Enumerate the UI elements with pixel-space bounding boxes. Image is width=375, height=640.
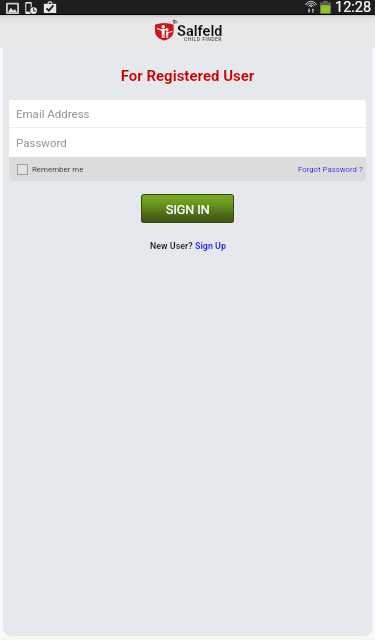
- staticText: Remember me: [32, 165, 84, 174]
- other: Work profile: [43, 1, 57, 14]
- button[interactable]: Sign Up: [195, 241, 226, 251]
- other: Screenshot captured: [6, 2, 19, 15]
- staticText: Sign Up: [195, 241, 226, 251]
- staticText: Email Address: [16, 107, 90, 120]
- other: Wi-Fi connected: [305, 1, 317, 13]
- staticText: Password: [16, 136, 67, 149]
- button[interactable]: Email Address: [9, 100, 366, 127]
- staticText: New User?: [150, 241, 195, 251]
- staticText: SIGN IN: [166, 202, 210, 217]
- other: Battery: [320, 1, 331, 14]
- staticText: 12:28: [335, 0, 372, 13]
- staticText: Forgot Password ?: [298, 165, 363, 174]
- staticText: Salfeld: [177, 23, 223, 40]
- button[interactable]: Remember me: [9, 157, 90, 181]
- button[interactable]: Password: [9, 128, 366, 157]
- other: Alarm set: [25, 2, 38, 15]
- staticText: CHILD FINDER: [184, 36, 222, 42]
- staticText: For Registered User: [0, 67, 375, 85]
- button[interactable]: SIGN IN: [141, 194, 234, 223]
- button[interactable]: Forgot Password ?: [292, 157, 366, 181]
